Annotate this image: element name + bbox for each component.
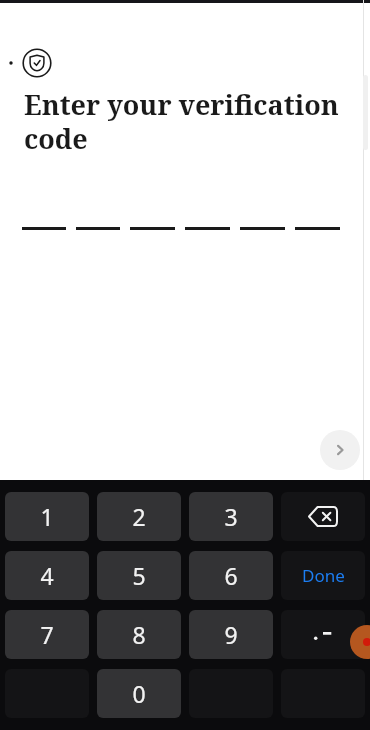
staticText: 3 — [224, 501, 238, 532]
staticText: 1 — [40, 501, 54, 532]
button[interactable]: 6 — [189, 551, 273, 600]
button[interactable] — [22, 48, 52, 78]
button[interactable]: 3 — [189, 492, 273, 541]
staticText: 8 — [132, 619, 146, 650]
staticText: Done — [302, 564, 345, 587]
staticText: 0 — [132, 678, 146, 709]
staticText: 9 — [224, 619, 238, 650]
staticText: 4 — [40, 560, 54, 591]
staticText: 2 — [132, 501, 146, 532]
button[interactable]: 8 — [97, 610, 181, 659]
staticText: 5 — [132, 560, 146, 591]
button[interactable]: 1 — [5, 492, 89, 541]
button[interactable]: 9 — [189, 610, 273, 659]
button[interactable]: Done — [281, 551, 365, 600]
button[interactable]: 7 — [5, 610, 89, 659]
button[interactable]: Dot dash — [281, 610, 365, 659]
button[interactable]: 2 — [97, 492, 181, 541]
button[interactable]: Next — [320, 430, 360, 470]
staticText: 6 — [224, 560, 238, 591]
button[interactable]: 5 — [97, 551, 181, 600]
button[interactable]: 0 — [97, 669, 181, 718]
button[interactable]: 4 — [5, 551, 89, 600]
staticText: 7 — [40, 619, 54, 650]
staticText: Enter your verification code — [24, 86, 346, 157]
button[interactable]: Backspace — [281, 492, 365, 541]
